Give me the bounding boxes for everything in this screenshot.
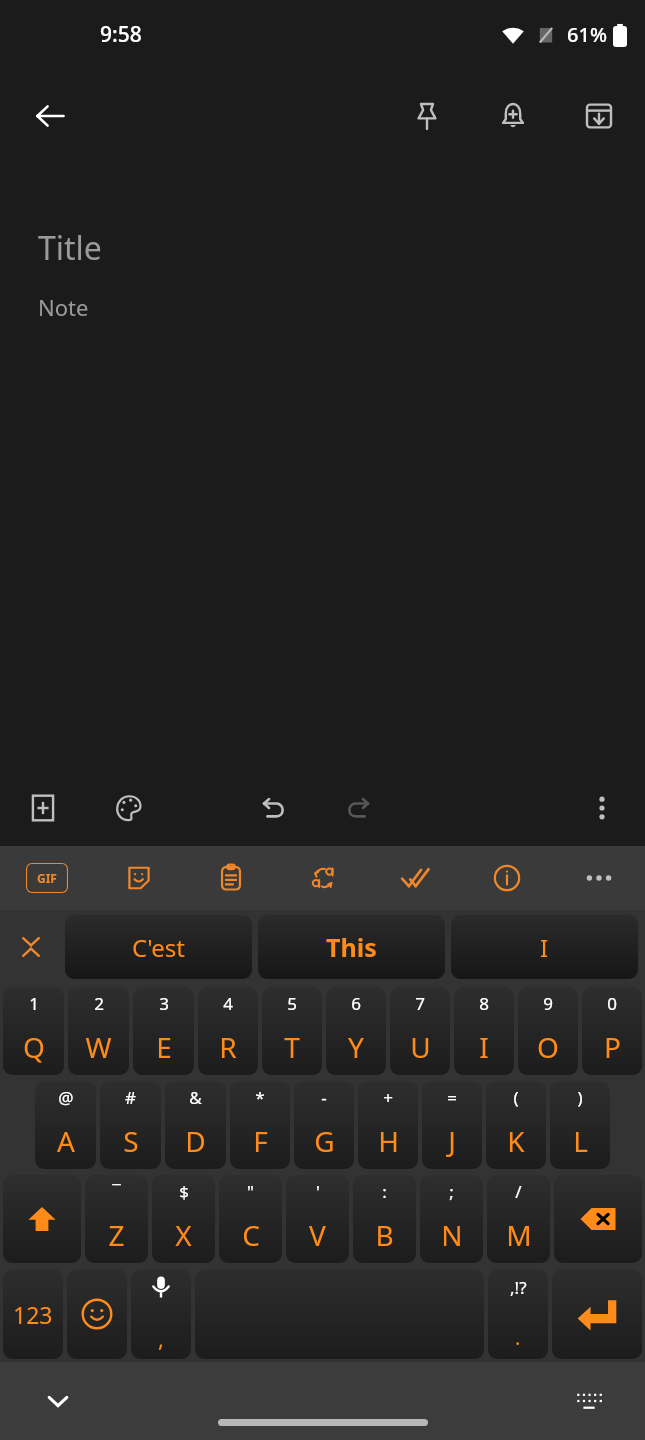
button[interactable]: Shift: [3, 1175, 81, 1263]
staticText: ‾: [112, 1180, 121, 1203]
staticText: U: [410, 1028, 431, 1066]
button[interactable]: Enter: [552, 1269, 642, 1359]
staticText: H: [378, 1122, 399, 1160]
button[interactable]: Color palette: [100, 779, 158, 837]
staticText: 0: [607, 992, 617, 1015]
staticText: ": [247, 1180, 254, 1203]
button[interactable]: Archive: [567, 84, 631, 148]
button[interactable]: 1: [3, 987, 64, 1075]
staticText: E: [156, 1028, 172, 1066]
button[interactable]: GIF: [0, 846, 93, 910]
staticText: 1: [29, 992, 39, 1015]
staticText: I: [540, 931, 549, 964]
button[interactable]: Period: [488, 1269, 548, 1359]
button[interactable]: Note: [38, 292, 89, 322]
staticText: 61%: [567, 21, 607, 48]
staticText: V: [309, 1216, 326, 1254]
staticText: +: [383, 1086, 393, 1109]
button[interactable]: $: [152, 1175, 215, 1263]
button[interactable]: 3: [133, 987, 194, 1075]
staticText: =: [447, 1086, 457, 1109]
staticText: ,: [158, 1323, 164, 1353]
button[interactable]: 5: [262, 987, 322, 1075]
button[interactable]: 2: [68, 987, 129, 1075]
button[interactable]: &: [165, 1081, 226, 1169]
staticText: S: [123, 1122, 139, 1160]
button[interactable]: 8: [454, 987, 514, 1075]
button[interactable]: (: [486, 1081, 546, 1169]
staticText: X: [175, 1216, 192, 1254]
button[interactable]: 4: [198, 987, 258, 1075]
button[interactable]: -: [294, 1081, 354, 1169]
button[interactable]: #: [100, 1081, 161, 1169]
button[interactable]: Backspace: [554, 1175, 642, 1263]
staticText: Q: [23, 1028, 45, 1066]
button[interactable]: ‾: [85, 1175, 148, 1263]
button[interactable]: Add: [14, 779, 72, 837]
button[interactable]: This: [258, 915, 445, 979]
button[interactable]: C'est: [65, 915, 252, 979]
button[interactable]: Translate: [277, 846, 369, 910]
staticText: 7: [415, 992, 425, 1015]
button[interactable]: Info: [461, 846, 553, 910]
button[interactable]: I: [451, 915, 638, 979]
button[interactable]: Switch keyboard: [563, 1375, 615, 1427]
staticText: @: [58, 1086, 74, 1109]
button[interactable]: 0: [582, 987, 642, 1075]
button[interactable]: /: [487, 1175, 550, 1263]
staticText: 9:58: [100, 20, 142, 49]
button[interactable]: :: [353, 1175, 416, 1263]
button[interactable]: Voice input: [131, 1269, 191, 1359]
staticText: N: [441, 1216, 463, 1254]
button[interactable]: +: [358, 1081, 418, 1169]
button[interactable]: Redo: [330, 779, 388, 837]
staticText: K: [507, 1122, 525, 1160]
button[interactable]: Expand suggestions: [0, 910, 62, 984]
staticText: $: [179, 1180, 189, 1203]
button[interactable]: *: [230, 1081, 290, 1169]
staticText: I: [479, 1028, 489, 1066]
button[interactable]: Title: [38, 226, 102, 270]
staticText: P: [604, 1028, 621, 1066]
staticText: ': [316, 1180, 320, 1203]
staticText: R: [219, 1028, 237, 1066]
button[interactable]: 9: [518, 987, 578, 1075]
button[interactable]: More: [553, 846, 645, 910]
button[interactable]: Pin: [395, 84, 459, 148]
button[interactable]: =: [422, 1081, 482, 1169]
button[interactable]: Sticker: [93, 846, 185, 910]
button[interactable]: 123: [3, 1269, 63, 1359]
button[interactable]: Reminder: [481, 84, 545, 148]
staticText: 4: [223, 992, 233, 1015]
button[interactable]: 6: [326, 987, 386, 1075]
staticText: GIF: [37, 870, 57, 886]
button[interactable]: ): [550, 1081, 610, 1169]
staticText: C: [242, 1216, 260, 1254]
button[interactable]: Back: [18, 84, 82, 148]
staticText: G: [314, 1122, 335, 1160]
staticText: #: [125, 1086, 136, 1109]
staticText: 5: [287, 992, 297, 1015]
staticText: 123: [13, 1299, 53, 1330]
button[interactable]: Emoji: [67, 1269, 127, 1359]
button[interactable]: 7: [390, 987, 450, 1075]
staticText: -: [321, 1086, 327, 1109]
button[interactable]: ": [219, 1175, 282, 1263]
button[interactable]: More options: [573, 779, 631, 837]
button[interactable]: ;: [420, 1175, 483, 1263]
staticText: J: [448, 1122, 456, 1160]
staticText: ;: [449, 1180, 454, 1203]
button[interactable]: @: [35, 1081, 96, 1169]
staticText: D: [185, 1122, 206, 1160]
staticText: 6: [351, 992, 361, 1015]
button[interactable]: Clipboard: [185, 846, 277, 910]
staticText: 3: [159, 992, 169, 1015]
button[interactable]: Hide keyboard: [32, 1375, 84, 1427]
staticText: :: [382, 1180, 387, 1203]
button[interactable]: ': [286, 1175, 349, 1263]
button[interactable]: Undo: [244, 779, 302, 837]
staticText: L: [573, 1122, 588, 1160]
staticText: M: [506, 1216, 532, 1254]
button[interactable]: Spell check: [369, 846, 461, 910]
button[interactable]: Space: [195, 1269, 484, 1359]
